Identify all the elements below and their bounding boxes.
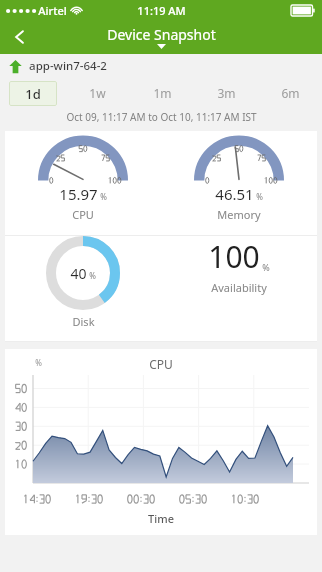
staticText: % <box>100 191 107 202</box>
button[interactable]: 3m <box>194 78 258 108</box>
staticText: 40 <box>70 264 87 283</box>
staticText: % <box>35 357 42 368</box>
staticText: 6m <box>281 85 300 101</box>
staticText: % <box>89 270 96 281</box>
staticText: Device Snapshot <box>107 25 216 44</box>
button[interactable]: Device Snapshot <box>107 25 216 49</box>
button[interactable]: 1m <box>130 78 194 108</box>
staticText: % <box>256 191 263 202</box>
button[interactable]: 1w <box>65 78 130 108</box>
staticText: CPU <box>149 356 173 372</box>
staticText: app-win7-64-2 <box>29 58 107 74</box>
staticText: 46.51 <box>215 184 254 204</box>
staticText: 15.97 <box>59 184 98 204</box>
staticText: 3m <box>217 85 236 101</box>
button[interactable]: 6m <box>258 78 322 108</box>
staticText: % <box>262 261 270 273</box>
staticText: Oct 09, 11:17 AM to Oct 10, 11:17 AM IST <box>66 110 257 124</box>
staticText: 11:19 AM <box>137 3 186 18</box>
button[interactable]: Back <box>0 20 40 54</box>
button[interactable]: 1d <box>0 78 65 108</box>
staticText: Time <box>148 511 174 526</box>
staticText: Availability <box>211 280 267 295</box>
staticText: Airtel <box>38 3 67 18</box>
staticText: 1m <box>153 85 172 101</box>
staticText: 1d <box>25 85 41 103</box>
staticText: CPU <box>72 207 94 222</box>
staticText: Disk <box>72 314 95 329</box>
staticText: 100 <box>208 236 260 277</box>
staticText: 1w <box>89 85 106 101</box>
staticText: Memory <box>217 207 261 222</box>
